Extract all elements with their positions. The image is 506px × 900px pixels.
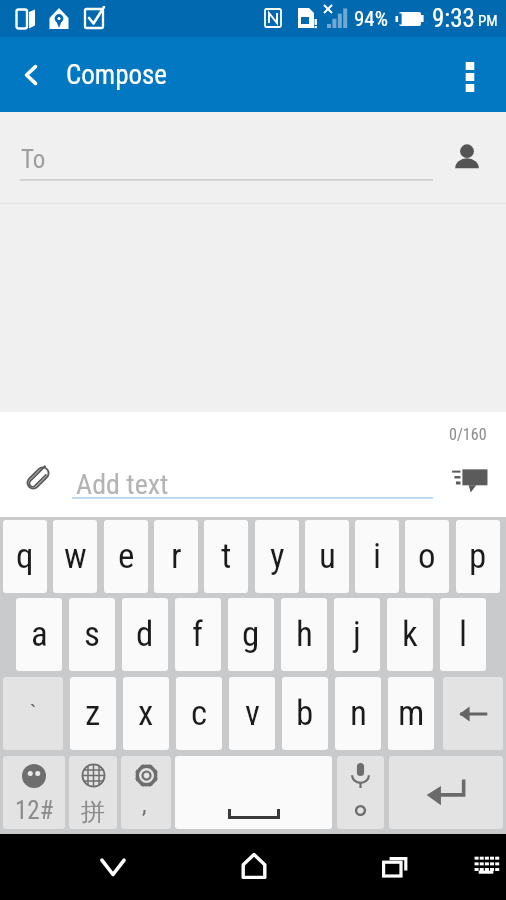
staticText: i	[373, 536, 382, 577]
staticText: l	[459, 614, 468, 655]
button[interactable]: y	[255, 520, 299, 593]
button[interactable]: Back	[90, 844, 136, 890]
staticText: u	[319, 536, 336, 577]
button[interactable]: Settings	[121, 756, 171, 829]
button[interactable]: Attach	[12, 452, 64, 504]
button[interactable]: k	[387, 598, 433, 671]
staticText: ,	[142, 792, 147, 819]
button[interactable]: o	[405, 520, 449, 593]
button[interactable]: Symbols	[3, 756, 65, 829]
staticText: n	[350, 693, 367, 734]
button[interactable]: h	[281, 598, 327, 671]
staticText: 9:33	[432, 4, 475, 33]
button[interactable]: l	[440, 598, 486, 671]
button[interactable]: a	[16, 598, 62, 671]
staticText: y	[270, 536, 285, 577]
button[interactable]: Switch language	[69, 756, 117, 829]
button[interactable]: Navigate up	[6, 50, 56, 100]
staticText: p	[469, 536, 487, 577]
staticText: e	[118, 536, 135, 577]
button[interactable]: e	[104, 520, 148, 593]
staticText: t	[221, 536, 232, 577]
button[interactable]: j	[334, 598, 380, 671]
staticText: f	[192, 614, 204, 655]
staticText: g	[242, 614, 260, 655]
staticText: d	[136, 614, 154, 655]
staticText: c	[191, 693, 208, 734]
staticText: q	[16, 536, 34, 577]
staticText: r	[171, 536, 182, 577]
button[interactable]: c	[176, 677, 222, 750]
button[interactable]: f	[175, 598, 221, 671]
staticText: a	[31, 614, 48, 655]
button[interactable]: q	[3, 520, 47, 593]
staticText: o	[418, 536, 436, 577]
staticText: w	[64, 536, 87, 577]
button[interactable]: w	[53, 520, 97, 593]
button[interactable]: Voice input	[337, 756, 384, 829]
button[interactable]: i	[355, 520, 399, 593]
button[interactable]: d	[122, 598, 168, 671]
staticText: h	[296, 614, 313, 655]
button[interactable]: t	[204, 520, 248, 593]
button[interactable]: Key	[443, 677, 503, 750]
button[interactable]: Home	[231, 843, 277, 889]
button[interactable]: x	[123, 677, 169, 750]
staticText: 12#	[15, 796, 54, 825]
button[interactable]: s	[69, 598, 115, 671]
staticText: To	[21, 145, 46, 174]
button[interactable]: r	[154, 520, 198, 593]
button[interactable]: g	[228, 598, 274, 671]
button[interactable]: More options	[445, 50, 495, 100]
button[interactable]: Send message	[444, 454, 496, 506]
staticText: `	[30, 701, 37, 727]
button[interactable]: b	[282, 677, 328, 750]
button[interactable]: Key	[3, 677, 63, 750]
button[interactable]: Enter	[389, 756, 503, 829]
button[interactable]: Choose contact	[444, 134, 490, 180]
staticText: Add text	[76, 468, 169, 501]
button[interactable]: u	[305, 520, 349, 593]
button[interactable]: p	[456, 520, 500, 593]
staticText: Compose	[66, 59, 168, 91]
button[interactable]: z	[70, 677, 116, 750]
staticText: k	[402, 614, 418, 655]
staticText: PM	[478, 12, 498, 30]
button[interactable]: n	[335, 677, 381, 750]
staticText: v	[245, 693, 260, 734]
staticText: z	[85, 693, 101, 734]
button[interactable]: m	[388, 677, 434, 750]
button[interactable]: v	[229, 677, 275, 750]
staticText: m	[398, 693, 425, 734]
staticText: x	[138, 693, 154, 734]
staticText: 94%	[354, 7, 389, 32]
staticText: b	[296, 693, 314, 734]
staticText: 拼	[81, 797, 105, 827]
button[interactable]: Recent apps	[372, 844, 418, 890]
staticText: 0/160	[449, 425, 487, 444]
button[interactable]: Space	[175, 756, 332, 829]
button[interactable]: Hide keyboard	[466, 845, 506, 885]
staticText: s	[84, 614, 100, 655]
staticText: j	[353, 614, 361, 655]
